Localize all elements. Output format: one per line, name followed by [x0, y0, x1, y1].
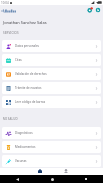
button[interactable]: Vacunas — [2, 155, 101, 167]
staticText: Vacunas — [15, 159, 27, 163]
staticText: Medicamentos — [15, 145, 36, 149]
button[interactable]: Citas — [2, 54, 101, 66]
button[interactable]: Validación de derechos — [2, 68, 101, 80]
staticText: SERVICIOS — [3, 31, 19, 35]
button[interactable]: Notificaciones — [87, 7, 93, 13]
staticText: Leer código de barras — [15, 100, 46, 104]
button[interactable]: Cuenta — [58, 168, 72, 175]
button[interactable]: Medicamentos — [2, 141, 101, 153]
staticText: Diagnósticos — [15, 131, 33, 135]
staticText: Trámite de novatos — [15, 86, 42, 90]
button[interactable]: Inicio — [32, 168, 46, 175]
staticText: Validación de derechos — [15, 72, 47, 76]
button[interactable]: Trámite de novatos — [2, 82, 101, 94]
staticText: Datos personales — [15, 44, 39, 48]
staticText: 10:04 — [1, 1, 9, 5]
button[interactable]: Datos personales — [2, 40, 101, 52]
button[interactable]: Leer código de barras — [2, 96, 101, 108]
staticText: Jonathan Sanchez Salas — [3, 20, 47, 25]
button[interactable]: Cuenta — [95, 7, 101, 13]
button[interactable]: Diagnósticos — [2, 127, 101, 139]
staticText: Citas — [15, 58, 22, 62]
staticText: MI SALUD — [3, 117, 18, 121]
